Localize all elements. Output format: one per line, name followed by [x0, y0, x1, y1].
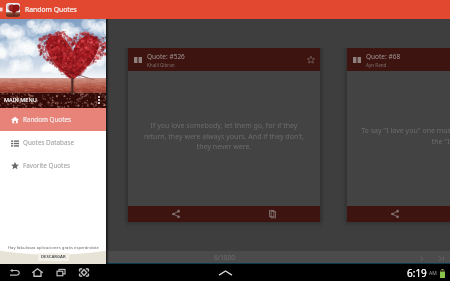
- button[interactable]: Last quote: [436, 253, 446, 263]
- staticText: Random Quotes: [23, 115, 72, 124]
- button[interactable]: Recent apps: [52, 264, 69, 281]
- other: Battery: [440, 269, 445, 278]
- button[interactable]: Random Quotes: [0, 108, 106, 131]
- button[interactable]: Next quote: [416, 253, 426, 263]
- staticText: Khalil Gibran: [147, 62, 175, 68]
- button[interactable]: Back: [6, 264, 23, 281]
- button[interactable]: DESCARGAR: [38, 253, 69, 261]
- button[interactable]: Quotes Database: [0, 131, 106, 154]
- button[interactable]: Share: [347, 206, 443, 222]
- staticText: MAIN MENU: [4, 96, 37, 104]
- staticText: Quotes Database: [23, 138, 75, 147]
- staticText: Favorite Quotes: [23, 161, 70, 170]
- staticText: Quote: #526: [147, 52, 185, 61]
- staticText: AM: [429, 270, 437, 277]
- staticText: 6:19: [407, 266, 427, 280]
- staticText: Hay fabulosas aplicaciones gratis esperá…: [8, 245, 99, 251]
- button[interactable]: Screenshot: [75, 264, 92, 281]
- staticText: If you love somebody, let them go, for i…: [142, 121, 306, 151]
- button[interactable]: Add to favorites: [305, 54, 316, 65]
- button[interactable]: More options: [95, 93, 103, 107]
- staticText: 6/1000: [214, 253, 236, 262]
- button[interactable]: Favorite Quotes: [0, 154, 106, 177]
- button[interactable]: Show notifications: [215, 266, 235, 280]
- staticText: DESCARGAR: [41, 254, 66, 260]
- staticText: Quote: #68: [366, 52, 401, 61]
- button[interactable]: Copy: [224, 206, 320, 222]
- staticText: To say "I love you" one must know first …: [361, 126, 450, 146]
- staticText: Ayn Rand: [366, 62, 387, 68]
- button[interactable]: Home: [29, 264, 46, 281]
- staticText: Random Quotes: [25, 5, 77, 14]
- button[interactable]: Share: [128, 206, 224, 222]
